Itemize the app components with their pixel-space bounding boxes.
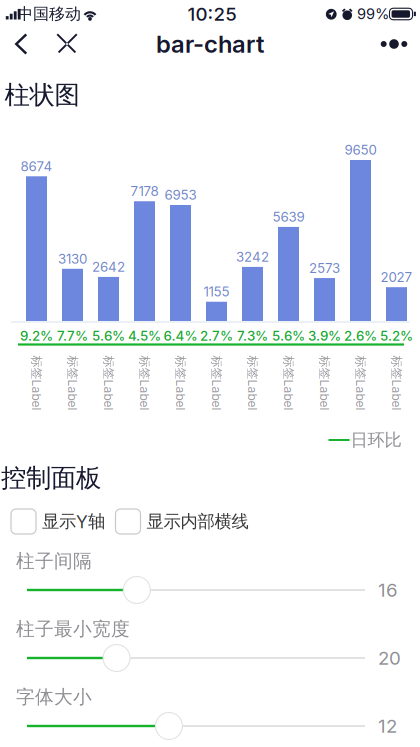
staticText: 6.4% bbox=[163, 328, 197, 344]
staticText: 9.2% bbox=[20, 328, 53, 344]
staticText: 控制面板 bbox=[1, 462, 101, 494]
staticText: 2027 bbox=[380, 269, 412, 285]
staticText: 7.3% bbox=[237, 328, 268, 344]
button[interactable]: 柱子最小宽度 bbox=[101, 642, 132, 673]
staticText: 标签Label bbox=[189, 375, 244, 390]
staticText: 2573 bbox=[309, 260, 340, 276]
staticText: 标签Label bbox=[153, 375, 208, 390]
staticText: 柱状图 bbox=[4, 79, 79, 111]
staticText: 16 bbox=[378, 579, 398, 601]
staticText: 标签Label bbox=[9, 375, 64, 390]
staticText: 标签Label bbox=[297, 375, 352, 390]
staticText: 2.6% bbox=[344, 328, 377, 344]
button[interactable]: 字体大小 bbox=[153, 710, 184, 741]
staticText: 4.5% bbox=[128, 328, 161, 344]
staticText: 12 bbox=[378, 715, 397, 737]
staticText: 8674 bbox=[20, 158, 52, 174]
staticText: 标签Label bbox=[81, 375, 136, 390]
button[interactable]: 柱子间隔 bbox=[121, 574, 152, 605]
staticText: bar-chart bbox=[156, 29, 264, 58]
staticText: 9650 bbox=[344, 142, 376, 158]
staticText: 5.6% bbox=[272, 328, 305, 344]
button[interactable]: Back bbox=[0, 22, 42, 65]
staticText: 标签Label bbox=[333, 375, 388, 390]
staticText: 中国移动 bbox=[17, 4, 81, 24]
staticText: 标签Label bbox=[261, 375, 316, 390]
button[interactable]: Close bbox=[44, 22, 89, 65]
staticText: 7.7% bbox=[57, 328, 88, 344]
staticText: 柱子间隔 bbox=[16, 549, 92, 573]
staticText: 10:25 bbox=[187, 3, 236, 25]
staticText: 柱子最小宽度 bbox=[16, 617, 130, 641]
staticText: 2642 bbox=[92, 259, 125, 275]
staticText: 标签Label bbox=[45, 375, 100, 390]
staticText: 标签Label bbox=[369, 375, 420, 390]
staticText: 3.9% bbox=[308, 328, 341, 344]
staticText: 20 bbox=[378, 647, 401, 669]
staticText: 5.2% bbox=[380, 328, 413, 344]
staticText: 99% bbox=[357, 5, 389, 23]
button[interactable]: 显示Y轴 bbox=[11, 506, 105, 537]
staticText: 标签Label bbox=[225, 375, 280, 390]
staticText: 2.7% bbox=[200, 328, 233, 344]
staticText: 7178 bbox=[130, 183, 158, 199]
button[interactable]: More options bbox=[370, 22, 417, 66]
staticText: 1155 bbox=[203, 284, 229, 300]
staticText: 6953 bbox=[164, 187, 196, 203]
button[interactable]: 显示内部横线 bbox=[115, 506, 248, 537]
staticText: 5639 bbox=[272, 209, 304, 225]
staticText: 日环比 bbox=[350, 429, 401, 451]
staticText: 显示Y轴 bbox=[42, 511, 105, 532]
staticText: 3242 bbox=[236, 249, 269, 265]
staticText: 字体大小 bbox=[16, 685, 92, 709]
staticText: 标签Label bbox=[117, 375, 172, 390]
staticText: 5.6% bbox=[92, 328, 125, 344]
staticText: 显示内部横线 bbox=[146, 511, 248, 532]
staticText: 3130 bbox=[58, 251, 87, 267]
